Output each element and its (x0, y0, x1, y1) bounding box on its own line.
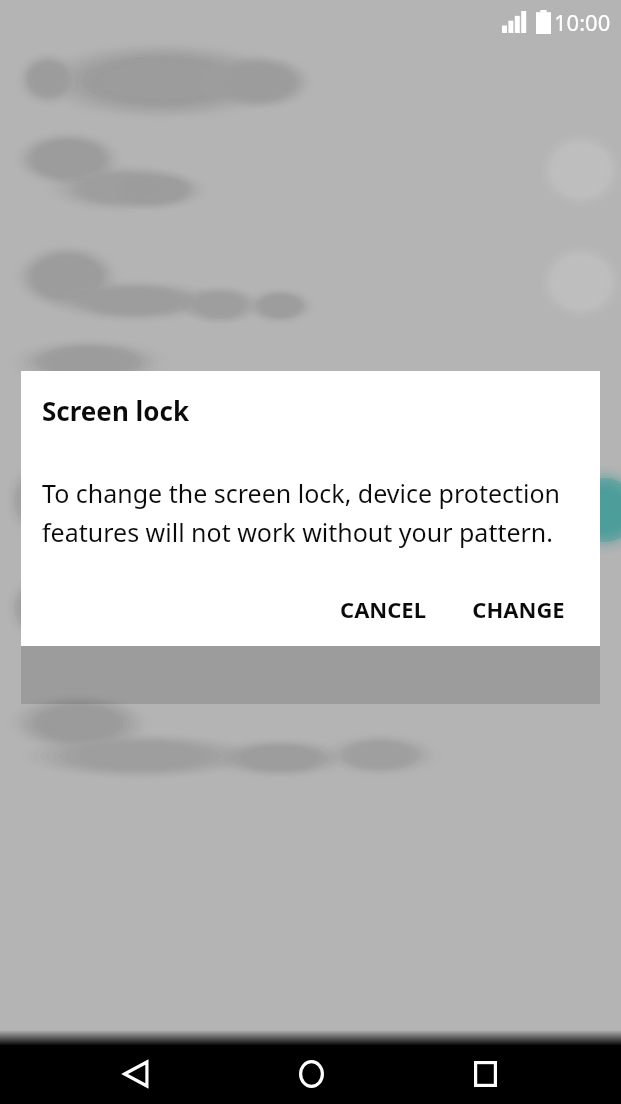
button[interactable]: CANCEL (326, 582, 440, 636)
button[interactable]: CHANGE (458, 582, 579, 636)
staticText: CHANGE (472, 594, 565, 624)
staticText: Screen lock (42, 393, 190, 428)
button[interactable]: Back (98, 1044, 174, 1104)
button[interactable]: Recent apps (447, 1044, 523, 1104)
staticText: 10:00 (554, 7, 611, 37)
staticText: CANCEL (340, 594, 426, 624)
button[interactable]: Home (273, 1044, 349, 1104)
staticText: To change the screen lock, device protec… (42, 476, 579, 550)
